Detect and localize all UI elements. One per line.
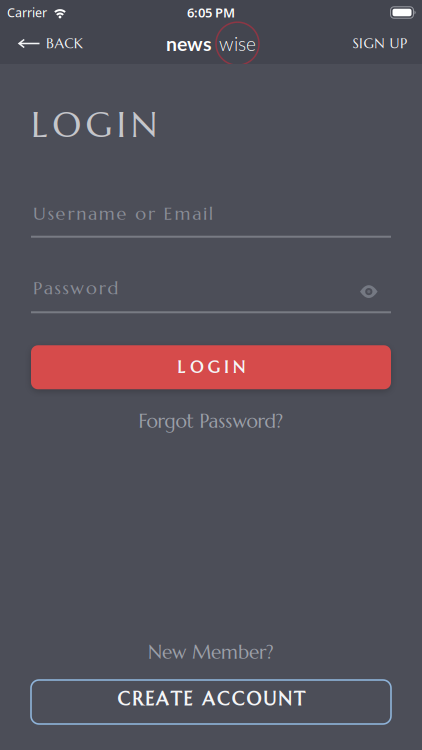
staticText: r (99, 277, 106, 299)
staticText: G (207, 357, 219, 378)
staticText: e (117, 202, 127, 225)
staticText: C (231, 687, 244, 711)
staticText: A (202, 687, 215, 711)
staticText: L (177, 357, 185, 378)
staticText: l (209, 202, 213, 225)
staticText: news (166, 32, 212, 55)
button[interactable]: Show password (360, 285, 378, 299)
staticText: O (52, 102, 81, 147)
staticText: E (164, 202, 173, 225)
staticText: O (246, 687, 261, 711)
staticText: wise (219, 32, 256, 55)
staticText: a (44, 277, 53, 299)
staticText: K (74, 35, 83, 52)
staticText: N (374, 35, 384, 52)
staticText: e (56, 202, 66, 225)
staticText: A (55, 35, 64, 52)
staticText: C (117, 687, 130, 711)
button[interactable]: C (31, 680, 391, 724)
staticText: s (48, 202, 54, 225)
staticText: s (55, 277, 61, 299)
staticText: L (31, 102, 48, 147)
button[interactable]: S (352, 35, 407, 52)
staticText: w (70, 277, 84, 299)
staticText: o (135, 202, 146, 225)
staticText: S (352, 35, 358, 52)
staticText: I (117, 102, 127, 147)
staticText: n (76, 202, 86, 225)
staticText: m (99, 202, 115, 225)
staticText: U (389, 35, 399, 52)
staticText: N (278, 687, 292, 711)
staticText: New Member? (148, 640, 274, 664)
staticText: N (233, 357, 245, 378)
button[interactable]: Forgot Password? (138, 409, 283, 433)
button[interactable]: B (18, 35, 83, 52)
staticText: B (46, 35, 54, 52)
staticText: I (224, 357, 228, 378)
staticText: a (192, 202, 201, 225)
staticText: r (148, 202, 155, 225)
staticText: 6:05 PM (187, 4, 235, 21)
staticText: C (217, 687, 230, 711)
staticText: A (156, 687, 169, 711)
staticText: m (174, 202, 190, 225)
staticText: P (400, 35, 407, 52)
staticText: I (359, 35, 363, 52)
staticText: T (294, 687, 305, 711)
staticText: R (132, 687, 143, 711)
staticText: Forgot Password? (138, 409, 283, 433)
staticText: C (64, 35, 73, 52)
staticText: r (67, 202, 74, 225)
staticText: a (88, 202, 97, 225)
staticText: Carrier (7, 4, 47, 21)
staticText: U (33, 202, 46, 225)
staticText: N (131, 102, 158, 147)
staticText: E (145, 687, 154, 711)
button[interactable]: L (31, 345, 391, 389)
staticText: P (33, 277, 42, 299)
staticText: G (85, 102, 112, 147)
staticText: O (190, 357, 203, 378)
staticText: s (62, 277, 68, 299)
staticText: i (203, 202, 207, 225)
staticText: E (183, 687, 192, 711)
staticText: T (170, 687, 181, 711)
staticText: G (364, 35, 374, 52)
staticText: o (86, 277, 97, 299)
staticText: U (263, 687, 276, 711)
staticText: d (108, 277, 119, 299)
